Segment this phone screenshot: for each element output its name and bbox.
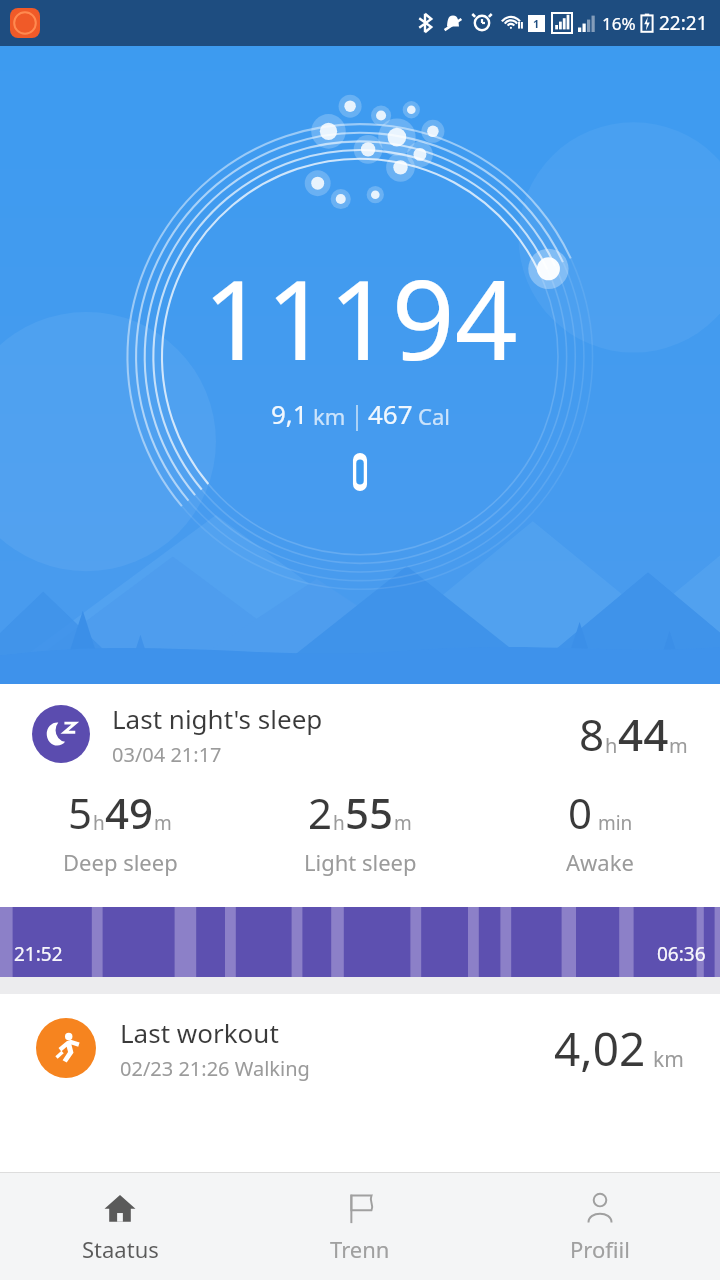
staticText: 9,1 [271, 396, 308, 431]
button[interactable]: Last night's sleep [0, 684, 720, 907]
staticText: 4,02 [554, 1017, 646, 1080]
staticText: 03/04 21:17 [112, 741, 222, 768]
staticText: 21:52 [14, 941, 63, 967]
staticText: 49 [105, 784, 154, 841]
button[interactable]: Profiil [480, 1173, 720, 1280]
staticText: Last workout [120, 1015, 279, 1050]
staticText: h [333, 810, 345, 836]
staticText: km [313, 401, 346, 431]
staticText: 02/23 21:26 Walking [120, 1055, 310, 1082]
staticText: m [669, 732, 688, 759]
staticText: 5 [68, 784, 93, 841]
staticText: 06:36 [657, 941, 706, 967]
staticText: Cal [418, 401, 450, 431]
staticText: 467 [368, 396, 413, 431]
staticText: 11194 [203, 242, 518, 392]
staticText: 22:21 [659, 10, 708, 36]
staticText: Awake [566, 847, 634, 877]
staticText: Trenn [330, 1234, 390, 1264]
staticText: 0 [568, 784, 593, 841]
staticText: m [394, 810, 412, 836]
button[interactable]: 11194 [0, 46, 720, 684]
staticText: 2 [308, 784, 333, 841]
button[interactable]: 21:52 [0, 907, 720, 977]
staticText: 55 [345, 784, 394, 841]
staticText: 44 [618, 704, 669, 764]
staticText: km [653, 1045, 684, 1074]
button[interactable]: Last workout [0, 994, 720, 1102]
staticText: 1 [533, 16, 540, 31]
staticText: Profiil [570, 1234, 630, 1264]
staticText: m [154, 810, 172, 836]
staticText: Staatus [82, 1234, 159, 1264]
staticText: Last night's sleep [112, 701, 323, 736]
staticText: 16% [602, 12, 636, 35]
staticText: Deep sleep [63, 847, 178, 877]
staticText: 8 [579, 704, 605, 764]
staticText: Light sleep [304, 847, 417, 877]
staticText: h [93, 810, 105, 836]
staticText: h [605, 732, 618, 759]
button[interactable]: Staatus [0, 1173, 240, 1280]
staticText: min [593, 810, 633, 836]
button[interactable]: Trenn [240, 1173, 480, 1280]
